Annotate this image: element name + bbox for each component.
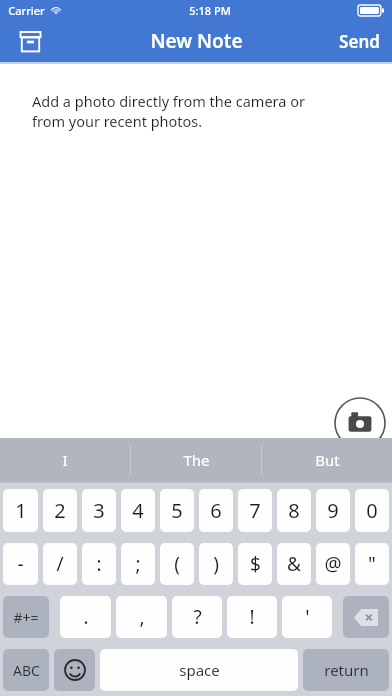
staticText: 1 [15, 497, 27, 524]
button[interactable]: ; [121, 543, 155, 585]
button[interactable]: I [0, 438, 130, 482]
staticText: / [56, 551, 64, 577]
button[interactable]: : [82, 543, 116, 585]
staticText: - [17, 551, 24, 577]
button[interactable] [54, 649, 95, 691]
button[interactable]: ) [199, 543, 233, 585]
staticText: ABC [13, 661, 40, 680]
button[interactable]: & [277, 543, 311, 585]
button[interactable]: , [116, 596, 167, 638]
staticText: ; [135, 551, 141, 577]
button[interactable]: Archive [10, 21, 50, 61]
staticText: return [324, 660, 369, 680]
staticText: : [96, 551, 102, 577]
staticText: 5:18 PM [189, 3, 231, 18]
staticText: ' [305, 604, 310, 630]
button[interactable]: 8 [277, 489, 311, 532]
staticText: 9 [327, 497, 339, 524]
staticText: & [287, 551, 301, 577]
button[interactable]: ! [227, 596, 277, 638]
staticText: " [368, 551, 376, 577]
staticText: ( [174, 551, 180, 577]
staticText: Add a photo directly from the camera or … [32, 91, 305, 131]
staticText: I [62, 450, 68, 470]
button[interactable]: " [355, 543, 389, 585]
staticText: Send [339, 30, 380, 53]
staticText: But [315, 450, 340, 470]
staticText: @ [324, 551, 342, 577]
button[interactable]: ? [172, 596, 222, 638]
button[interactable] [343, 596, 389, 638]
button[interactable]: 7 [238, 489, 272, 532]
button[interactable]: 0 [355, 489, 389, 532]
staticText: ! [249, 604, 255, 630]
button[interactable]: The [131, 438, 261, 482]
button[interactable]: 2 [43, 489, 77, 532]
button[interactable]: Recent photos [283, 448, 333, 498]
staticText: , [139, 604, 145, 630]
staticText: . [83, 604, 89, 630]
staticText: space [179, 660, 220, 680]
button[interactable]: 9 [316, 489, 350, 532]
staticText: The [183, 450, 210, 470]
staticText: ) [213, 551, 219, 577]
staticText: 0 [366, 497, 378, 524]
button[interactable]: return [303, 649, 389, 691]
staticText: Carrier [8, 3, 45, 18]
staticText: $ [250, 551, 261, 577]
button[interactable]: ( [160, 543, 194, 585]
staticText: 8 [288, 497, 300, 524]
button[interactable]: 5 [160, 489, 194, 532]
staticText: 6 [210, 497, 222, 524]
button[interactable]: But [262, 438, 392, 482]
button[interactable]: ABC [3, 649, 49, 691]
staticText: 5 [171, 497, 183, 524]
button[interactable]: Close [335, 448, 385, 498]
button[interactable]: 3 [82, 489, 116, 532]
button[interactable]: Take photo [334, 397, 386, 449]
button[interactable]: / [43, 543, 77, 585]
staticText: 2 [54, 497, 66, 524]
button[interactable]: 6 [199, 489, 233, 532]
button[interactable]: @ [316, 543, 350, 585]
button[interactable]: $ [238, 543, 272, 585]
button[interactable]: Send [339, 30, 380, 53]
staticText: 4 [132, 497, 144, 524]
button[interactable]: #+= [3, 596, 49, 638]
staticText: New Note [150, 28, 243, 54]
button[interactable]: - [3, 543, 38, 585]
button[interactable]: 4 [121, 489, 155, 532]
staticText: #+= [13, 608, 39, 627]
button[interactable]: ' [282, 596, 332, 638]
button[interactable]: space [100, 649, 298, 691]
staticText: ? [193, 604, 202, 630]
button[interactable]: . [60, 596, 111, 638]
staticText: 7 [249, 497, 261, 524]
button[interactable]: 1 [3, 489, 38, 532]
staticText: 3 [93, 497, 105, 524]
